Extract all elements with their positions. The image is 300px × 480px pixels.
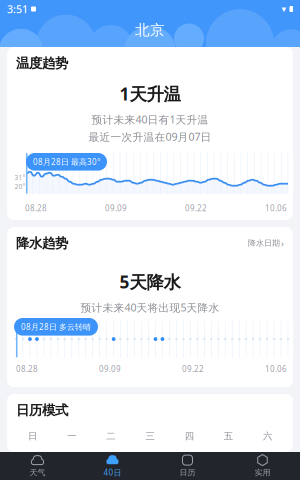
staticText: 预计未来40日有1天升温 xyxy=(91,112,208,127)
staticText: 5天降水 xyxy=(119,270,180,293)
staticText: 日 xyxy=(28,430,37,442)
staticText: 五 xyxy=(224,430,233,442)
staticText: 08月28日 最高30° xyxy=(33,156,100,167)
staticText: 六 xyxy=(263,430,272,442)
staticText: 实用 xyxy=(254,468,270,477)
staticText: 09.09 xyxy=(99,364,121,374)
staticText: 三 xyxy=(145,430,154,442)
staticText: ▾ xyxy=(281,4,286,14)
button[interactable]: 降水日期 xyxy=(248,237,284,249)
staticText: 3:51 xyxy=(7,2,28,16)
staticText: 预计未来40天将出现5天降水 xyxy=(80,300,219,315)
staticText: 二 xyxy=(106,430,115,442)
staticText: 日历 xyxy=(179,468,195,477)
staticText: 温度趋势 xyxy=(16,55,68,71)
staticText: › xyxy=(281,237,284,249)
staticText: 08.28 xyxy=(16,364,38,374)
staticText: 09.09 xyxy=(105,203,127,213)
staticText: 20° xyxy=(14,182,25,191)
staticText: 08月28日 多云转晴 xyxy=(21,321,91,332)
staticText: 四 xyxy=(185,430,194,442)
staticText: 降水趋势 xyxy=(16,235,68,251)
staticText: 08.28 xyxy=(25,203,47,213)
staticText: 10.06 xyxy=(265,203,287,213)
staticText: 09.22 xyxy=(185,203,207,213)
staticText: 日历模式 xyxy=(16,402,68,418)
staticText: 天气 xyxy=(29,468,45,477)
button[interactable]: 日历 xyxy=(150,452,225,480)
staticText: 10.06 xyxy=(265,364,287,374)
staticText: 一 xyxy=(67,430,76,442)
staticText: 降水日期 xyxy=(248,238,280,248)
button[interactable]: 天气 xyxy=(0,452,75,480)
staticText: 31° xyxy=(14,173,25,182)
staticText: 40日 xyxy=(103,467,121,478)
staticText: 北京 xyxy=(135,21,165,39)
button[interactable]: 实用 xyxy=(225,452,300,480)
staticText: 最近一次升温在09月07日 xyxy=(88,130,211,144)
staticText: 09.22 xyxy=(182,364,204,374)
staticText: 1天升温 xyxy=(119,82,180,105)
button[interactable]: 40日 xyxy=(75,452,150,480)
